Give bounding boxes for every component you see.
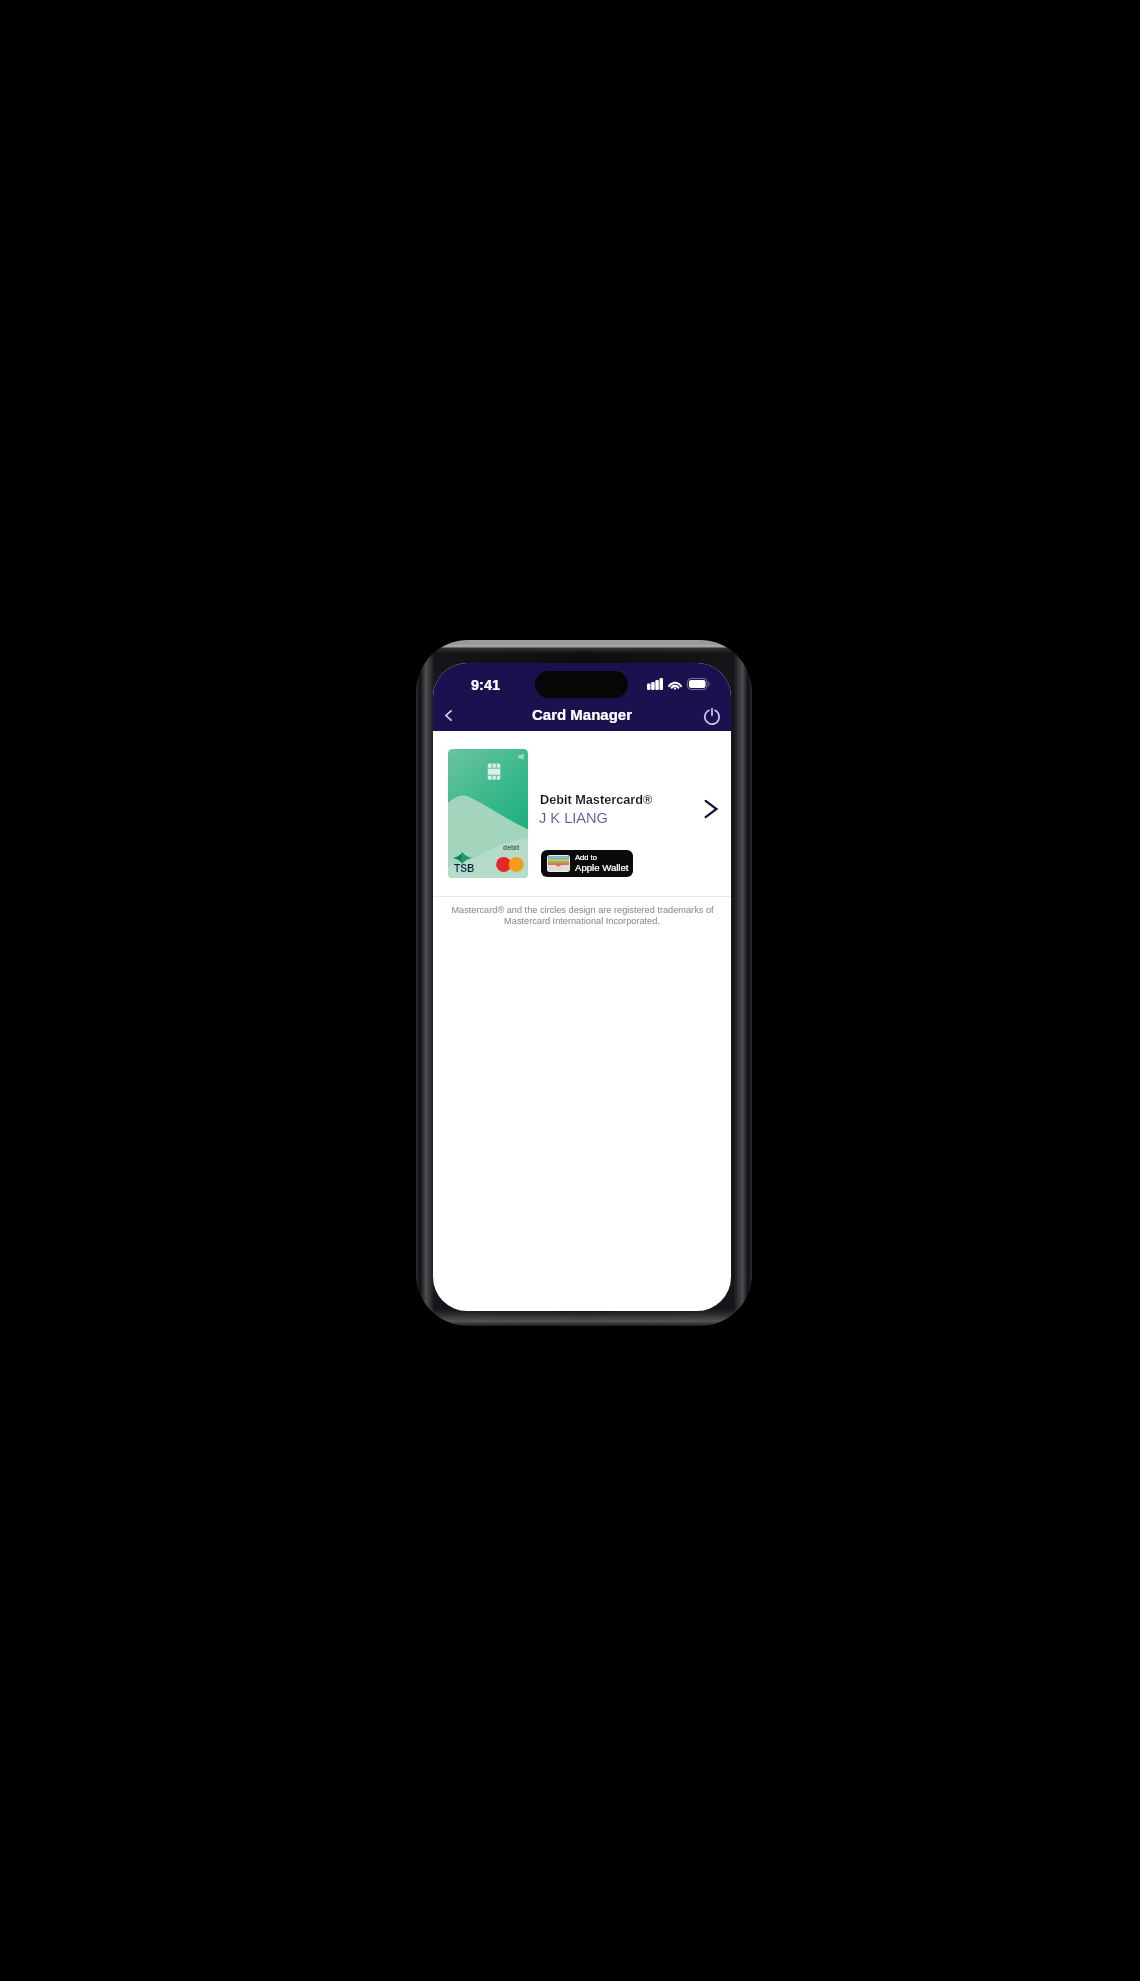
button[interactable]: Add to — [541, 850, 633, 877]
button[interactable]: Back — [434, 701, 462, 729]
staticText: debit — [503, 844, 520, 852]
staticText: Mastercard International Incorporated. — [504, 916, 660, 926]
staticText: J K LIANG — [539, 810, 608, 826]
staticText: Debit Mastercard® — [540, 793, 653, 807]
staticText: TSB — [454, 863, 475, 874]
button[interactable]: Power off — [700, 704, 724, 728]
staticText: Card Manager — [532, 706, 633, 723]
staticText: Add to — [575, 853, 597, 861]
staticText: Apple Wallet — [575, 862, 629, 873]
staticText: 9:41 — [471, 677, 501, 693]
button[interactable]: Card details — [698, 796, 724, 822]
staticText: Mastercard® and the circles design are r… — [451, 905, 714, 915]
